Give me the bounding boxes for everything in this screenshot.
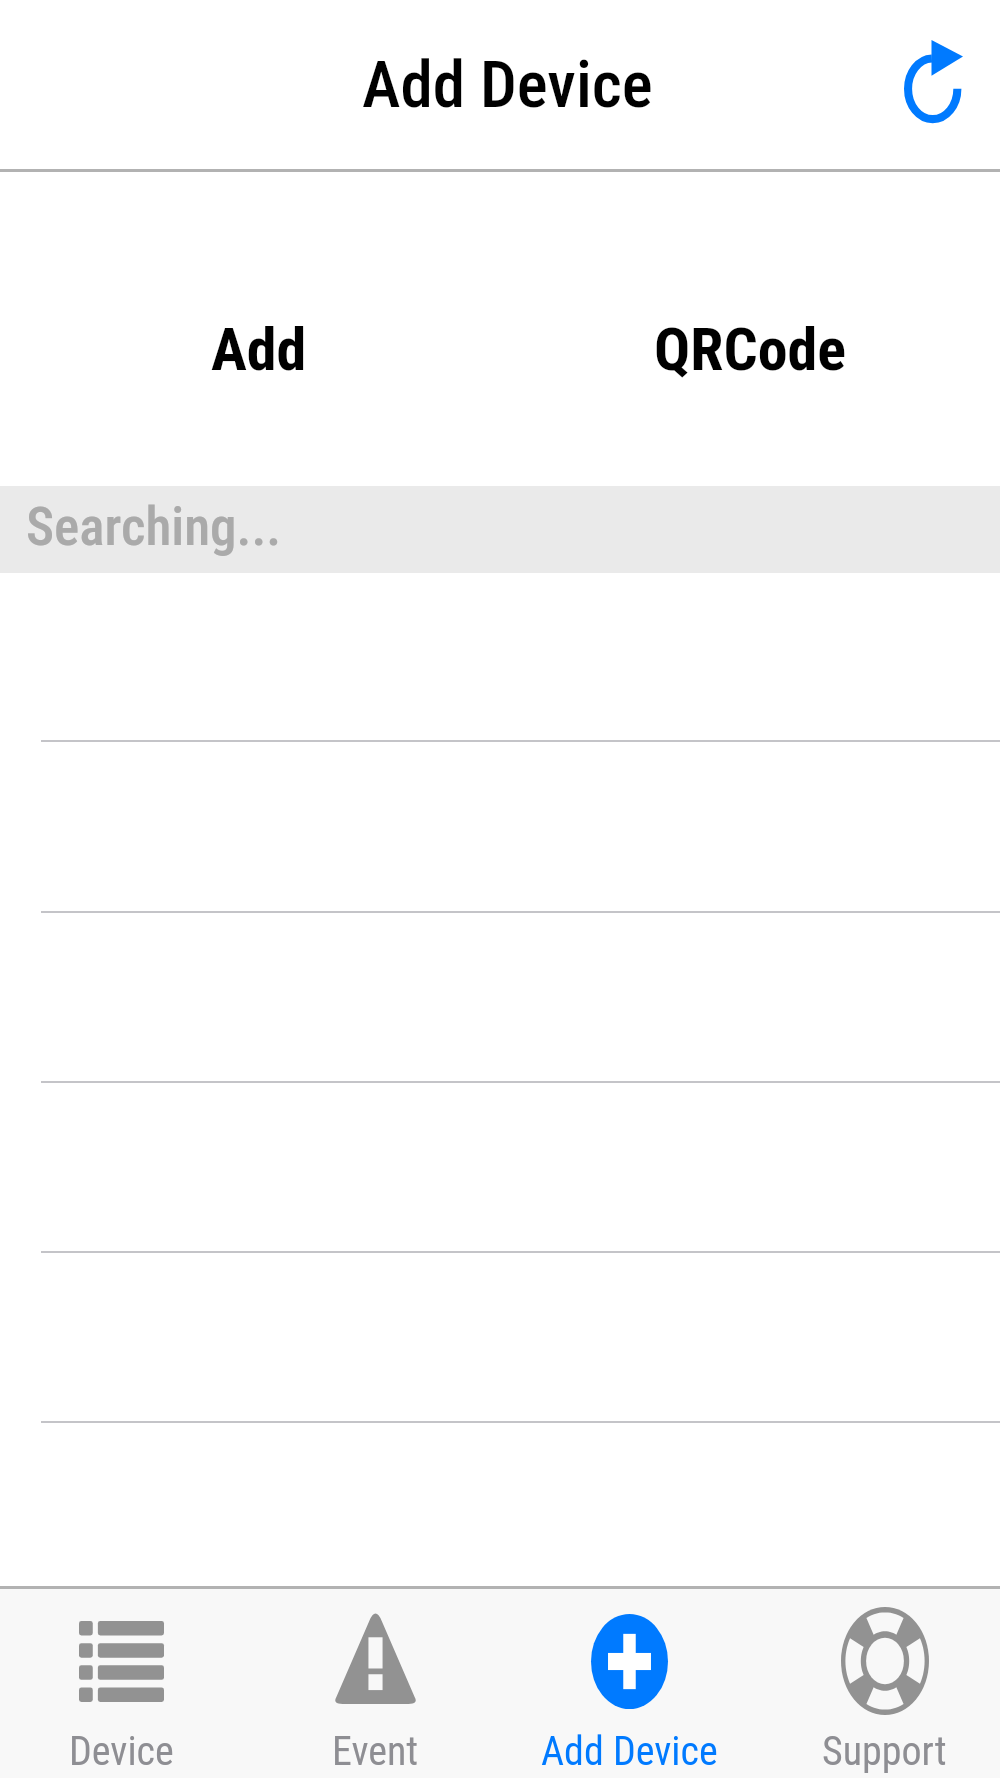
button[interactable] [0, 1083, 1000, 1253]
button[interactable] [0, 573, 1000, 742]
button[interactable]: Support [757, 1586, 1000, 1778]
button[interactable]: QRCode [509, 172, 1000, 486]
button[interactable]: Add [9, 172, 509, 486]
staticText: Searching... [26, 496, 282, 558]
button[interactable] [0, 913, 1000, 1083]
staticText: Support [822, 1728, 947, 1775]
staticText: Add Device [362, 47, 653, 123]
staticText: Add [211, 314, 307, 384]
staticText: Add Device [541, 1728, 718, 1775]
button[interactable]: Add Device [502, 1586, 757, 1778]
button[interactable]: Refresh [873, 26, 993, 146]
button[interactable]: Device [0, 1586, 248, 1778]
button[interactable] [0, 742, 1000, 913]
staticText: QRCode [654, 314, 846, 384]
button[interactable] [0, 1253, 1000, 1423]
staticText: Device [69, 1728, 174, 1775]
staticText: Event [332, 1728, 419, 1775]
button[interactable]: Event [248, 1586, 502, 1778]
